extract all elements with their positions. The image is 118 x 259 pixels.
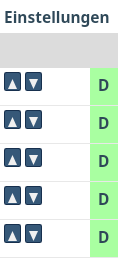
button[interactable]: D	[0, 144, 118, 182]
button[interactable]: D	[0, 106, 118, 144]
button[interactable]: D	[0, 68, 118, 106]
staticText: D	[98, 188, 110, 209]
button[interactable]: Sort descending	[26, 73, 41, 90]
staticText: D	[98, 226, 110, 247]
button[interactable]: Sort ascending	[5, 225, 20, 242]
button[interactable]: Sort ascending	[5, 73, 20, 90]
staticText: D	[98, 150, 110, 171]
staticText: D	[98, 112, 110, 133]
button[interactable]: Sort descending	[26, 225, 41, 242]
button[interactable]: Sort descending	[26, 149, 41, 166]
staticText: Einstellungen	[4, 6, 110, 27]
button[interactable]: Sort ascending	[5, 149, 20, 166]
button[interactable]: Sort descending	[26, 187, 41, 204]
button[interactable]: D	[0, 220, 118, 258]
staticText: D	[98, 74, 110, 95]
button[interactable]: Sort descending	[26, 111, 41, 128]
button[interactable]: D	[0, 182, 118, 220]
button[interactable]: Sort ascending	[5, 187, 20, 204]
button[interactable]: Sort ascending	[5, 111, 20, 128]
